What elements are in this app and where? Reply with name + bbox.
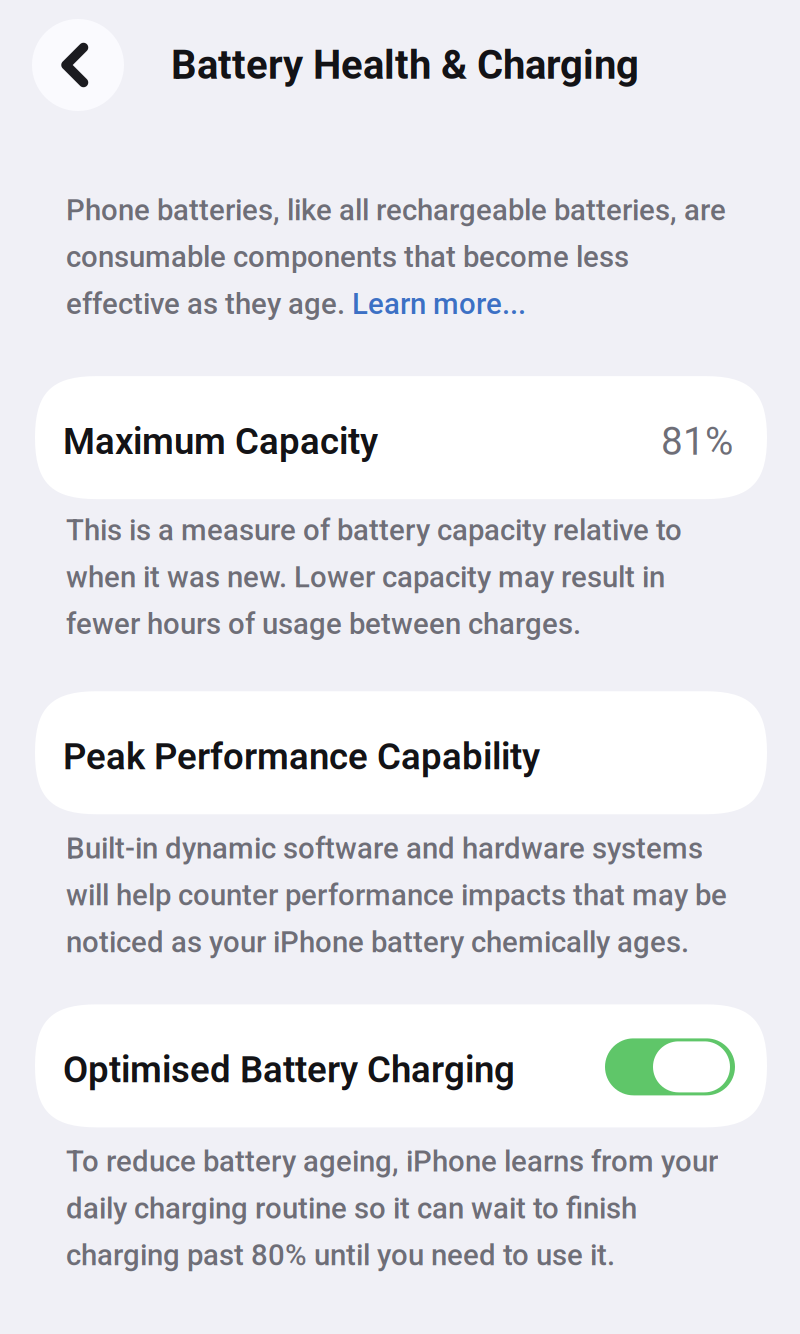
button[interactable]: Back — [32, 19, 124, 111]
button[interactable]: Peak Performance Capability — [35, 691, 767, 814]
staticText: consumable components that become less — [66, 240, 629, 274]
staticText: Learn more... — [352, 287, 526, 321]
button[interactable]: Learn more... — [352, 287, 526, 321]
button[interactable]: Optimised Battery Charging — [35, 1004, 767, 1127]
staticText: Battery Health & Charging — [171, 42, 639, 88]
staticText: Built-in dynamic software and hardware s… — [66, 831, 703, 866]
staticText: Maximum Capacity — [63, 420, 378, 463]
staticText: noticed as your iPhone battery chemicall… — [66, 925, 689, 959]
staticText: To reduce battery ageing, iPhone learns … — [66, 1144, 718, 1179]
staticText: 81% — [661, 419, 733, 464]
staticText: This is a measure of battery capacity re… — [66, 513, 682, 547]
staticText: fewer hours of usage between charges. — [66, 607, 581, 641]
button[interactable]: Maximum Capacity — [35, 376, 767, 499]
staticText: effective as they age. — [66, 287, 352, 321]
staticText: Optimised Battery Charging — [63, 1048, 515, 1091]
staticText: Phone batteries, like all rechargeable b… — [66, 193, 726, 227]
staticText: will help counter performance impacts th… — [66, 878, 727, 912]
staticText: daily charging routine so it can wait to… — [66, 1191, 637, 1226]
staticText: when it was new. Lower capacity may resu… — [66, 560, 665, 594]
staticText: charging past 80% until you need to use … — [66, 1238, 615, 1272]
staticText: Peak Performance Capability — [63, 735, 540, 778]
